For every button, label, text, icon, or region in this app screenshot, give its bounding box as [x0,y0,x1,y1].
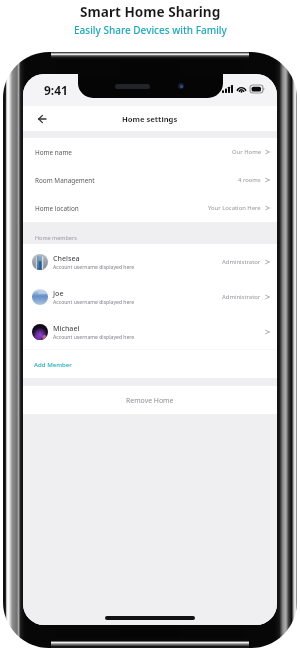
staticText: Administrator [222,293,261,301]
staticText: Your Location Here [208,204,261,212]
staticText: Home name [35,148,72,157]
button[interactable]: Remove Home [23,386,277,414]
staticText: 4 rooms [238,176,261,184]
staticText: Room Management [35,176,95,185]
staticText: 9:41 [44,82,68,98]
staticText: Our Home [232,148,261,156]
button[interactable]: Back [33,110,51,128]
staticText: Easily Share Devices with Family [74,23,227,37]
staticText: Administrator [222,258,261,266]
staticText: Chelsea [53,253,80,263]
staticText: Home members [35,234,77,241]
button[interactable]: Add Member [23,350,277,378]
button[interactable]: Joe [23,279,277,314]
button[interactable]: Chelsea [23,244,277,279]
staticText: Home settings [122,114,178,124]
staticText: Home location [35,204,79,213]
staticText: Account username displayed here [53,334,135,341]
staticText: Joe [53,288,64,298]
button[interactable]: Home location [23,194,277,222]
button[interactable]: Michael [23,314,277,349]
staticText: Add Member [34,360,72,368]
staticText: Smart Home Sharing [80,2,221,21]
button[interactable]: Home name [23,138,277,166]
button[interactable]: Room Management [23,166,277,194]
staticText: Michael [53,323,80,333]
staticText: Account username displayed here [53,264,135,271]
staticText: Remove Home [126,396,174,405]
staticText: Account username displayed here [53,299,135,306]
